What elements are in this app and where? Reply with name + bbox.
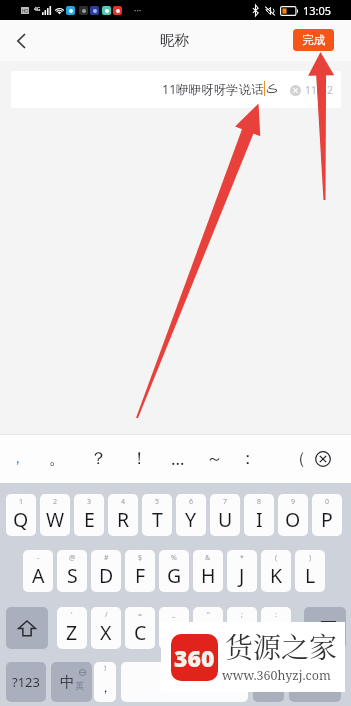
- staticText: C: [134, 619, 147, 646]
- button[interactable]: ，: [4, 434, 30, 483]
- button[interactable]: 9: [278, 494, 308, 536]
- staticText: 5: [155, 497, 160, 507]
- staticText: O: [285, 506, 301, 533]
- staticText: Y: [185, 506, 197, 533]
- button[interactable]: #: [91, 550, 121, 592]
- staticText: 8: [257, 497, 262, 507]
- staticText: G: [167, 562, 182, 589]
- button[interactable]: 4: [108, 494, 138, 536]
- button[interactable]: Shift: [6, 607, 48, 649]
- staticText: V: [168, 619, 180, 646]
- staticText: D: [99, 562, 114, 589]
- button[interactable]: Delete: [310, 434, 336, 483]
- button[interactable]: 中: [51, 662, 92, 702]
- staticText: =: [138, 610, 143, 620]
- staticText: ?123: [12, 673, 40, 691]
- staticText: T: [152, 506, 163, 533]
- staticText: 昵称: [160, 31, 189, 49]
- staticText: 中: [60, 673, 75, 692]
- button[interactable]: Clear text: [289, 84, 301, 96]
- staticText: 3: [87, 497, 92, 507]
- staticText: HD: [22, 8, 29, 14]
- staticText: W: [46, 506, 65, 533]
- button[interactable]: @: [57, 550, 87, 592]
- staticText: ;: [241, 610, 243, 620]
- staticText: 13:05: [303, 3, 332, 18]
- button[interactable]: 5: [142, 494, 172, 536]
- staticText: S: [67, 562, 78, 589]
- button[interactable]: Space: [121, 662, 248, 702]
- staticText: ···: [134, 4, 142, 16]
- staticText: :: [275, 610, 277, 620]
- staticText: A: [32, 562, 45, 589]
- staticText: %: [171, 553, 177, 563]
- staticText: X: [100, 619, 112, 646]
- staticText: F: [135, 562, 146, 589]
- button[interactable]: ？: [85, 434, 111, 483]
- staticText: ڪ: [266, 82, 278, 95]
- staticText: I: [256, 506, 263, 533]
- staticText: @: [69, 553, 76, 563]
- staticText: H: [201, 562, 216, 589]
- button[interactable]: 1: [6, 494, 36, 536]
- button[interactable]: 3: [74, 494, 104, 536]
- staticText: 。: [262, 674, 275, 690]
- button[interactable]: *: [227, 550, 257, 592]
- staticText: U: [218, 506, 233, 533]
- button[interactable]: ?123: [6, 662, 46, 702]
- button[interactable]: ！: [94, 662, 116, 702]
- button[interactable]: Enter: [289, 662, 341, 702]
- staticText: E: [84, 506, 95, 533]
- button[interactable]: %: [159, 550, 189, 592]
- button[interactable]: 。: [44, 434, 70, 483]
- button[interactable]: ：: [234, 434, 260, 483]
- staticText: 0: [325, 497, 330, 507]
- button[interactable]: ～: [201, 434, 227, 483]
- staticText: …: [171, 447, 185, 470]
- button[interactable]: 8: [244, 494, 274, 536]
- staticText: J: [239, 562, 245, 589]
- button[interactable]: =: [125, 607, 155, 649]
- button[interactable]: Emoji: [253, 662, 284, 702]
- button[interactable]: 2: [40, 494, 70, 536]
- button[interactable]: /: [91, 607, 121, 649]
- staticText: /: [105, 610, 108, 620]
- staticText: Z: [66, 619, 78, 646]
- staticText: 4: [121, 497, 126, 507]
- staticText: 货源之家: [225, 626, 338, 666]
- staticText: 11/12: [305, 83, 333, 97]
- button[interactable]: :: [261, 607, 291, 649]
- staticText: ): [309, 553, 312, 563]
- button[interactable]: 完成: [293, 29, 334, 51]
- button[interactable]: (: [261, 550, 291, 592]
- button[interactable]: &: [193, 550, 223, 592]
- staticText: 360: [174, 642, 215, 673]
- button[interactable]: $: [125, 550, 155, 592]
- button[interactable]: ": [193, 607, 223, 649]
- staticText: R: [117, 506, 130, 533]
- staticText: 4G: [34, 6, 41, 13]
- button[interactable]: ！: [126, 434, 152, 483]
- staticText: ！: [101, 663, 109, 673]
- button[interactable]: ): [295, 550, 325, 592]
- staticText: ！: [131, 448, 148, 469]
- staticText: 7: [223, 497, 228, 507]
- button[interactable]: Backspace: [304, 607, 346, 649]
- staticText: ，: [10, 449, 25, 468]
- staticText: Q: [13, 506, 29, 533]
- staticText: ～: [206, 448, 223, 469]
- button[interactable]: ': [57, 607, 87, 649]
- button[interactable]: 6: [176, 494, 206, 536]
- button[interactable]: …: [165, 434, 191, 483]
- staticText: #: [104, 553, 109, 563]
- button[interactable]: 0: [312, 494, 342, 536]
- button[interactable]: ;: [227, 607, 257, 649]
- button[interactable]: （: [284, 434, 310, 483]
- button[interactable]: -: [23, 550, 53, 592]
- button[interactable]: 7: [210, 494, 240, 536]
- button[interactable]: _: [159, 607, 189, 649]
- button[interactable]: 11咿咿呀呀学说话: [11, 71, 341, 108]
- button[interactable]: Back: [8, 28, 34, 54]
- staticText: 英: [75, 680, 84, 691]
- staticText: 2: [53, 497, 58, 507]
